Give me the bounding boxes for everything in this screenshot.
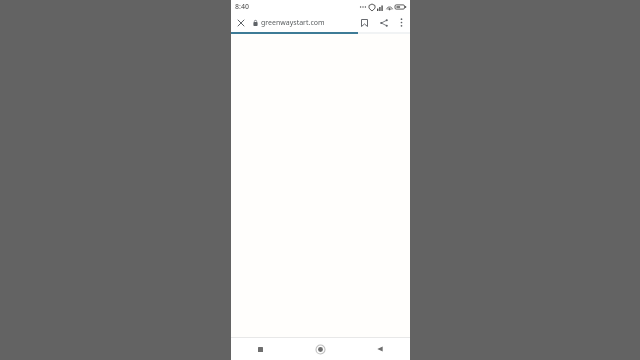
button[interactable]: Home [290,338,350,360]
button[interactable]: More options [393,14,410,31]
button[interactable]: Recent apps [231,338,290,360]
button[interactable]: Close [231,13,250,32]
staticText: 8:40 [235,2,249,12]
button[interactable]: Share [374,13,393,32]
button[interactable]: Back [350,338,410,360]
button[interactable]: greenwaystart.com [250,13,355,32]
staticText: greenwaystart.com [261,18,325,28]
button[interactable]: Bookmark [355,13,374,32]
